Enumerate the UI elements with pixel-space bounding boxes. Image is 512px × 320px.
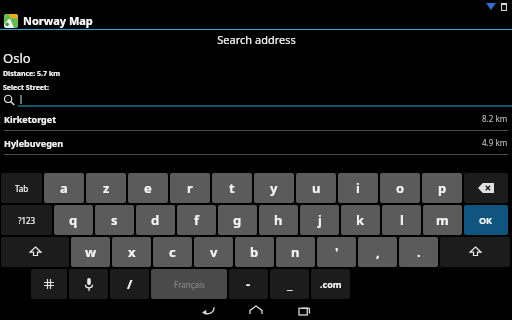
staticText: g (233, 211, 242, 229)
staticText: OK (479, 214, 493, 226)
button[interactable]: e (128, 173, 168, 203)
staticText: h (274, 211, 283, 229)
button[interactable]: b (235, 237, 274, 267)
staticText: Hylebuvegen (4, 137, 64, 149)
staticText: z (103, 179, 110, 197)
staticText: d (151, 211, 160, 229)
button[interactable]: i (338, 173, 378, 203)
staticText: i (356, 179, 360, 197)
staticText: t (229, 179, 235, 197)
button[interactable]: w (71, 237, 110, 267)
button[interactable]: u (296, 173, 336, 203)
button[interactable]: Recents (293, 302, 315, 318)
button[interactable]: / (110, 269, 149, 299)
button[interactable]: Kirketorget (0, 107, 512, 130)
staticText: Distance: 5.7 km (3, 69, 61, 79)
staticText: Norway Map (23, 13, 93, 28)
staticText: f (194, 211, 200, 229)
button[interactable]: m (423, 205, 462, 235)
button[interactable]: c (153, 237, 192, 267)
button[interactable]: - (229, 269, 268, 299)
staticText: _ (287, 275, 293, 293)
staticText: u (312, 179, 321, 197)
staticText: Search address (217, 32, 296, 47)
button[interactable]: Home (245, 302, 267, 318)
button[interactable]: q (54, 205, 93, 235)
button[interactable]: t (212, 173, 252, 203)
staticText: . (417, 243, 421, 261)
button[interactable]: Voice input (69, 269, 108, 299)
button[interactable]: g (218, 205, 257, 235)
button[interactable]: r (170, 173, 210, 203)
button[interactable]: OK (464, 205, 508, 235)
button[interactable]: k (341, 205, 380, 235)
staticText: , (376, 243, 380, 261)
button[interactable]: z (86, 173, 126, 203)
staticText: l (400, 211, 404, 229)
staticText: 4.9 km (482, 137, 508, 148)
staticText: a (60, 179, 68, 197)
button[interactable]: Shift (1, 237, 69, 267)
staticText: Oslo (3, 49, 31, 67)
staticText: c (169, 243, 176, 261)
button[interactable]: Back (197, 302, 219, 318)
button[interactable]: s (95, 205, 134, 235)
staticText: - (246, 275, 251, 293)
button[interactable]: x (112, 237, 151, 267)
button[interactable]: l (382, 205, 421, 235)
staticText: ?123 (18, 215, 36, 226)
button[interactable]: , (358, 237, 397, 267)
button[interactable]: ?123 (1, 205, 52, 235)
staticText: ' (335, 243, 339, 261)
button[interactable]: a (44, 173, 84, 203)
staticText: / (127, 275, 133, 293)
button[interactable]: . (399, 237, 438, 267)
button[interactable]: Shift (440, 237, 510, 267)
button[interactable]: h (259, 205, 298, 235)
staticText: Kirketorget (4, 113, 57, 125)
staticText: m (436, 211, 449, 229)
staticText: Select Street: (3, 83, 50, 93)
button[interactable]: .com (311, 269, 350, 299)
staticText: v (210, 243, 218, 261)
staticText: 8.2 km (482, 113, 508, 124)
staticText: s (111, 211, 118, 229)
button[interactable] (0, 93, 512, 107)
button[interactable]: j (300, 205, 339, 235)
button[interactable]: d (136, 205, 175, 235)
button[interactable]: Switch keyboard (31, 269, 67, 299)
button[interactable]: Backspace (464, 173, 508, 203)
staticText: w (85, 243, 97, 261)
staticText: n (291, 243, 300, 261)
button[interactable]: y (254, 173, 294, 203)
button[interactable]: o (380, 173, 420, 203)
button[interactable]: _ (270, 269, 309, 299)
button[interactable]: f (177, 205, 216, 235)
button[interactable]: Français (151, 269, 227, 299)
staticText: j (318, 211, 322, 229)
staticText: r (187, 179, 193, 197)
staticText: p (438, 179, 447, 197)
button[interactable]: v (194, 237, 233, 267)
button[interactable]: Hylebuvegen (0, 131, 512, 154)
staticText: Français (174, 279, 205, 290)
staticText: q (69, 211, 78, 229)
staticText: .com (320, 278, 342, 290)
staticText: y (270, 179, 278, 197)
button[interactable]: n (276, 237, 315, 267)
staticText: x (128, 243, 136, 261)
button[interactable]: Tab (1, 173, 42, 203)
staticText: b (250, 243, 259, 261)
staticText: o (396, 179, 405, 197)
staticText: e (144, 179, 152, 197)
staticText: Tab (15, 183, 29, 194)
button[interactable]: p (422, 173, 462, 203)
staticText: k (356, 211, 365, 229)
button[interactable]: ' (317, 237, 356, 267)
